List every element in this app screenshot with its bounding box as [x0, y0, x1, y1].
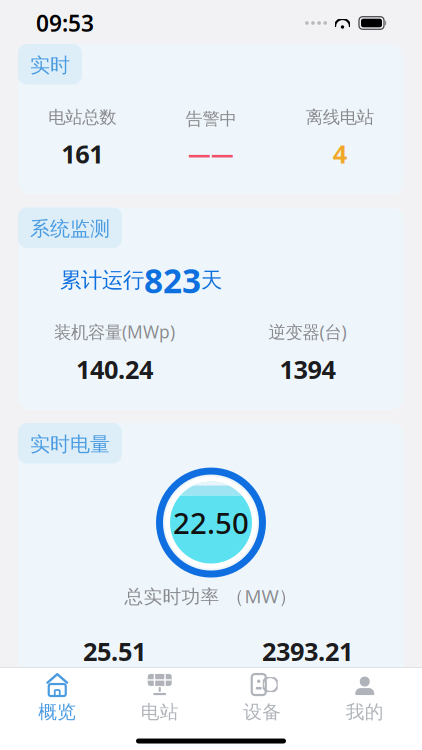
- staticText: 112.41: [269, 719, 346, 750]
- staticText: 电站总数: [48, 107, 116, 128]
- staticText: 1394: [279, 352, 335, 386]
- staticText: 月发电量(MWh): [247, 676, 368, 699]
- staticText: 我的: [346, 700, 384, 723]
- staticText: 概览: [38, 700, 76, 723]
- button[interactable]: 我的: [313, 666, 416, 725]
- staticText: 823: [144, 258, 201, 302]
- staticText: 天: [201, 267, 222, 293]
- staticText: 电站: [141, 700, 179, 723]
- staticText: 2393.21: [262, 634, 353, 668]
- staticText: 装机容量(MWp): [54, 320, 175, 343]
- staticText: 25.51: [83, 634, 146, 668]
- button[interactable]: 电站: [108, 666, 211, 725]
- staticText: 17.08: [83, 719, 146, 750]
- staticText: 累计运行: [60, 267, 144, 293]
- staticText: 4: [333, 137, 347, 170]
- staticText: 日发电量(MWh): [54, 676, 175, 699]
- button[interactable]: 概览: [6, 666, 108, 725]
- staticText: 实时电量: [30, 432, 110, 457]
- staticText: 22.50: [173, 503, 249, 542]
- staticText: 161: [61, 137, 103, 170]
- staticText: 系统监测: [30, 216, 110, 241]
- staticText: ——: [188, 139, 234, 169]
- staticText: 140.24: [76, 352, 153, 386]
- staticText: 09:53: [36, 8, 94, 38]
- staticText: 总实时功率 （MW）: [124, 584, 297, 608]
- staticText: 离线电站: [306, 107, 374, 128]
- staticText: 实时: [30, 53, 70, 78]
- staticText: 逆变器(台): [268, 320, 346, 343]
- staticText: 设备: [243, 700, 281, 723]
- staticText: 告警中: [185, 108, 236, 130]
- button[interactable]: 设备: [211, 666, 313, 725]
